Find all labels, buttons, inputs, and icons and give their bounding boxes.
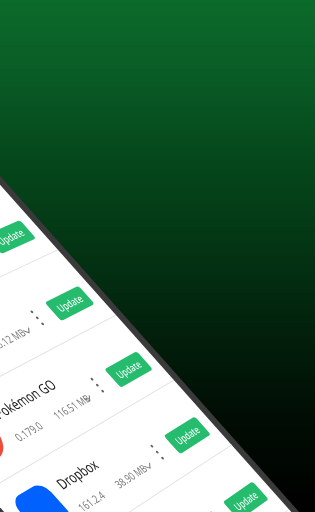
button[interactable]	[0, 0, 315, 512]
